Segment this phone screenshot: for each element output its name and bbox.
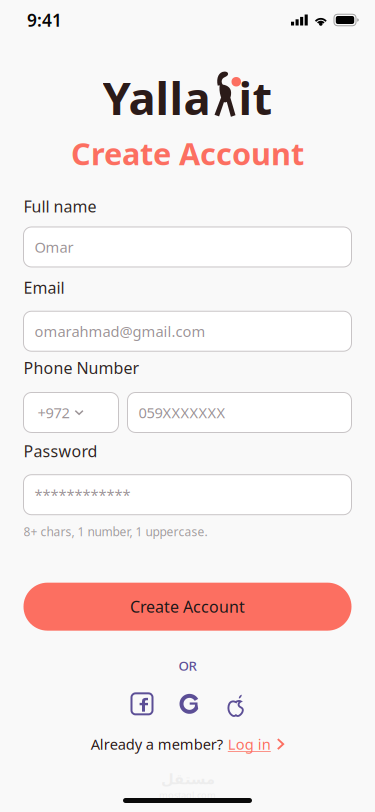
button[interactable]: ************ (23, 475, 351, 515)
staticText: it (238, 67, 272, 128)
button[interactable]: Log in (228, 734, 284, 754)
staticText: OR (178, 657, 196, 674)
staticText: Already a member? (91, 734, 223, 754)
staticText: Create Account (71, 133, 304, 174)
staticText: Create Account (130, 596, 245, 617)
staticText: omarahmad@gmail.com (34, 321, 205, 341)
button[interactable]: +972 (23, 392, 118, 432)
staticText: Phone Number (23, 357, 139, 378)
button[interactable]: Omar (23, 227, 351, 267)
staticText: +972 (37, 403, 69, 422)
staticText: Email (23, 277, 64, 298)
button[interactable]: Create Account (23, 583, 351, 631)
staticText: Password (23, 440, 97, 462)
staticText: Full name (23, 196, 96, 217)
staticText: 8+ chars, 1 number, 1 uppercase. (23, 524, 207, 540)
button[interactable]: Sign up with Apple (225, 692, 244, 715)
staticText: Yalla (102, 67, 210, 128)
button[interactable]: 059XXXXXXX (127, 392, 351, 432)
staticText: Omar (34, 237, 73, 257)
button[interactable]: omarahmad@gmail.com (23, 311, 351, 351)
staticText: Log in (228, 734, 271, 754)
button[interactable]: Sign up with Google (178, 693, 200, 715)
staticText: مستقل (160, 771, 214, 788)
staticText: 059XXXXXXX (138, 403, 225, 422)
button[interactable]: Sign up with Facebook (130, 692, 153, 715)
staticText: ************ (34, 485, 130, 504)
staticText: 9:41 (27, 8, 62, 31)
staticText: mostaql.com (159, 789, 216, 801)
